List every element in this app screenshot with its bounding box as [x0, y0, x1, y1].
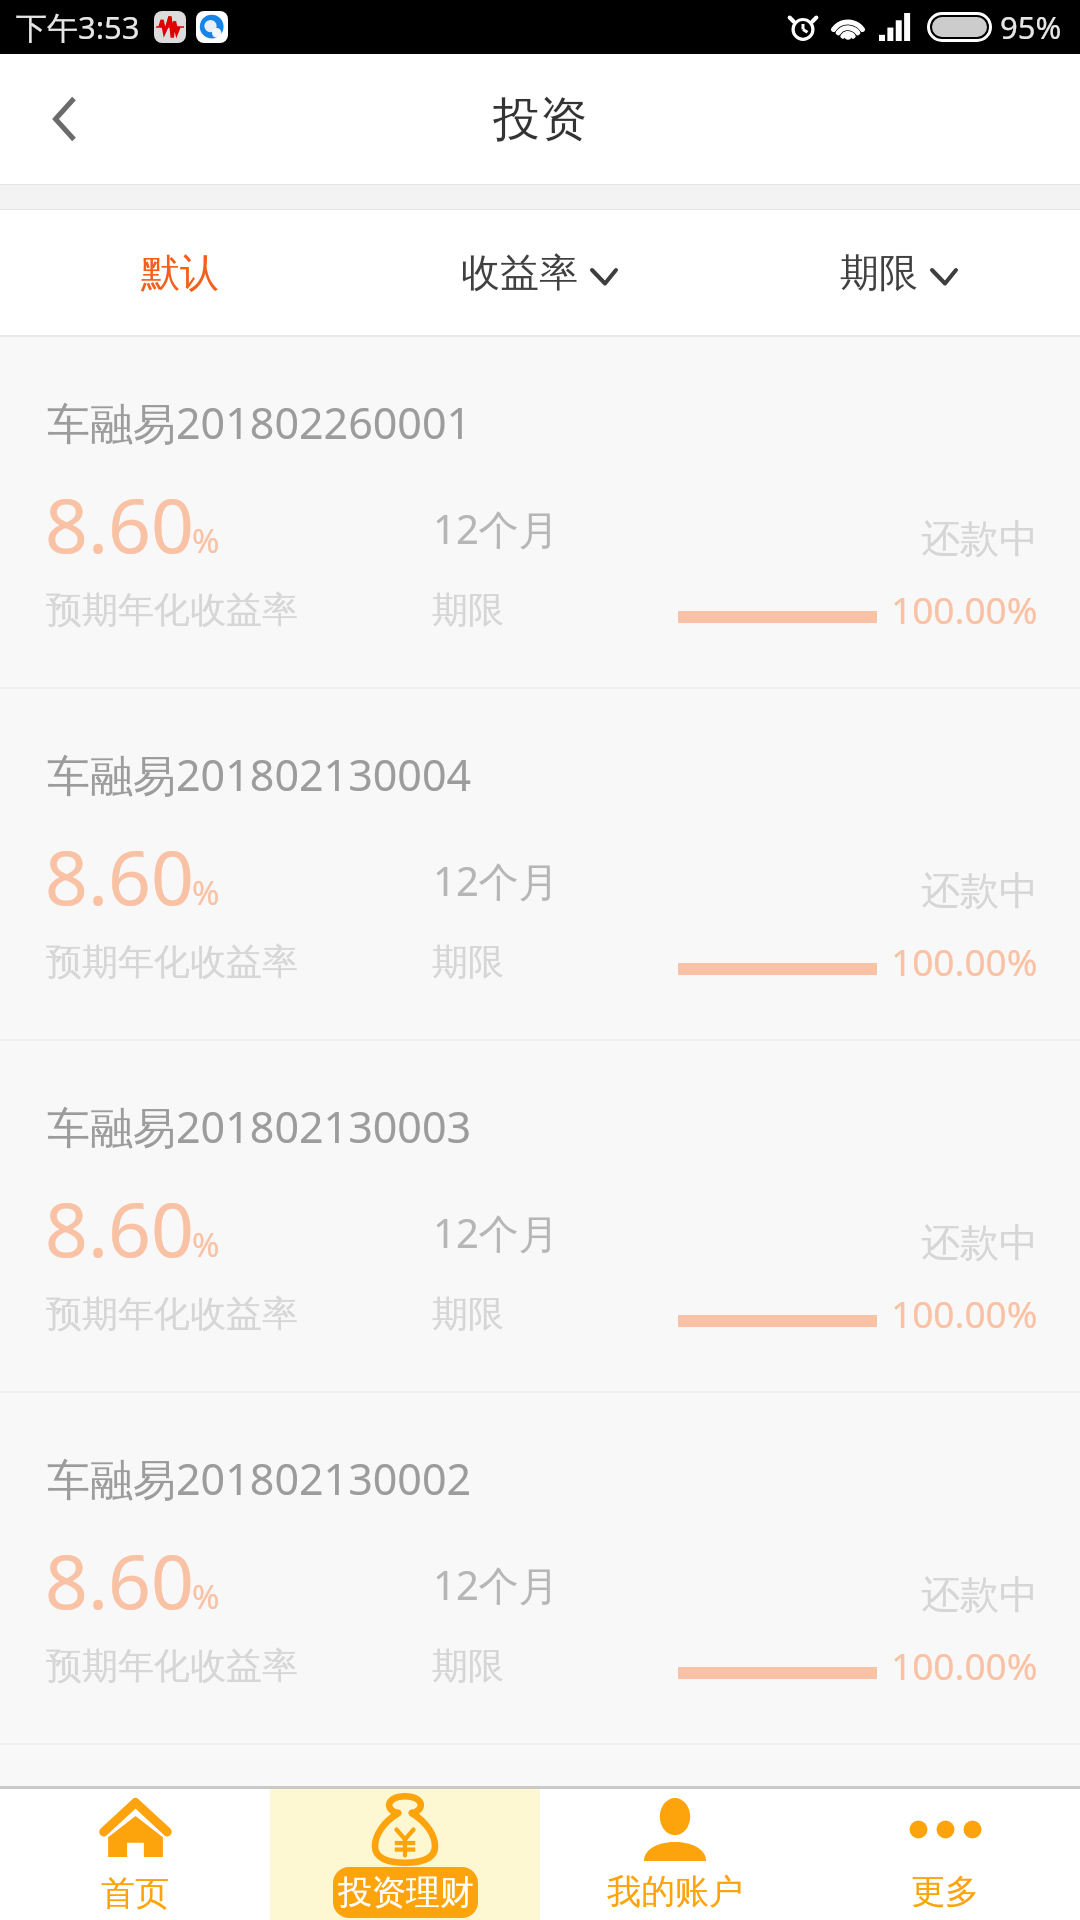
staticText: 收益率: [461, 248, 578, 297]
staticText: 预期年化收益率: [46, 939, 298, 984]
staticText: 100.00%: [891, 1288, 1038, 1338]
staticText: 更多: [911, 1870, 979, 1913]
staticText: 还款中: [921, 1218, 1038, 1267]
staticText: 期限: [432, 587, 504, 632]
staticText: 12个月: [433, 853, 559, 908]
button[interactable]: 车融易201802130002: [0, 1393, 1080, 1743]
staticText: 8.60: [45, 473, 194, 575]
staticText: %: [192, 1574, 220, 1619]
button[interactable]: Back: [0, 54, 130, 184]
staticText: 车融易201802130004: [47, 745, 472, 804]
staticText: 首页: [101, 1872, 169, 1915]
staticText: 100.00%: [891, 1640, 1038, 1690]
staticText: 默认: [141, 248, 219, 297]
button[interactable]: 我的账户: [540, 1789, 810, 1920]
staticText: 8.60: [45, 1177, 194, 1279]
button[interactable]: 收益率: [360, 210, 720, 335]
staticText: 12个月: [433, 1557, 559, 1612]
staticText: %: [192, 870, 220, 915]
staticText: 还款中: [921, 514, 1038, 563]
staticText: 车融易201802130002: [47, 1449, 472, 1508]
staticText: 8.60: [45, 1529, 194, 1631]
staticText: 8.60: [45, 825, 194, 927]
button[interactable]: 投资理财: [270, 1789, 540, 1920]
button[interactable]: 车融易201802260001: [0, 337, 1080, 687]
staticText: 预期年化收益率: [46, 587, 298, 632]
staticText: 100.00%: [891, 936, 1038, 986]
staticText: 投资: [493, 90, 587, 149]
button[interactable]: 车融易201802130004: [0, 689, 1080, 1039]
button[interactable]: 车融易201802130003: [0, 1041, 1080, 1391]
staticText: 12个月: [433, 1205, 559, 1260]
staticText: 100.00%: [891, 584, 1038, 634]
staticText: 期限: [432, 939, 504, 984]
staticText: 还款中: [921, 866, 1038, 915]
button[interactable]: 更多: [810, 1789, 1080, 1920]
staticText: 下午3:53: [16, 6, 140, 48]
staticText: %: [192, 518, 220, 563]
staticText: 还款中: [921, 1570, 1038, 1619]
staticText: 12个月: [433, 501, 559, 556]
staticText: 期限: [432, 1643, 504, 1688]
staticText: 预期年化收益率: [46, 1643, 298, 1688]
staticText: 车融易201802260001: [47, 393, 472, 452]
button[interactable]: 默认: [0, 210, 360, 335]
staticText: 期限: [840, 248, 918, 297]
staticText: %: [192, 1222, 220, 1267]
staticText: 预期年化收益率: [46, 1291, 298, 1336]
button[interactable]: 首页: [0, 1789, 270, 1920]
staticText: 期限: [432, 1291, 504, 1336]
staticText: 我的账户: [607, 1870, 743, 1913]
staticText: 车融易201802130003: [47, 1097, 472, 1156]
staticText: 95%: [1000, 6, 1062, 48]
button[interactable]: 期限: [720, 210, 1080, 335]
staticText: 投资理财: [338, 1871, 474, 1914]
